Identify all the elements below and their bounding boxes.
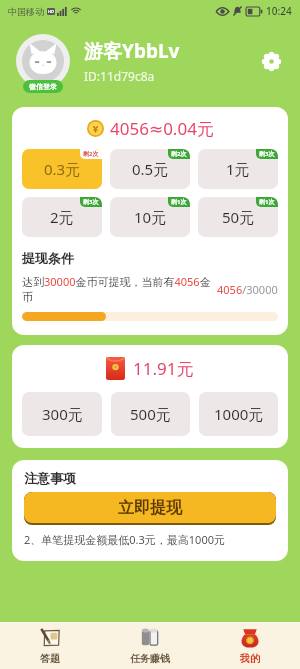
staticText: 500元 — [130, 404, 171, 424]
staticText: 1000元 — [214, 404, 264, 424]
staticText: 剩3次 — [83, 198, 99, 206]
staticText: 注意事项 — [24, 470, 76, 486]
button[interactable]: 10元 — [110, 197, 190, 237]
button[interactable]: 微信登录 — [23, 80, 63, 93]
staticText: 10:24 — [266, 4, 292, 18]
staticText: 剩3次 — [259, 150, 275, 158]
button[interactable]: 1000元 — [199, 392, 278, 436]
staticText: 4056≈0.04元 — [110, 117, 214, 140]
button[interactable]: 500元 — [111, 392, 190, 436]
staticText: 达到30000金币可提现，当前有4056金币 — [22, 274, 211, 304]
button[interactable]: 0.5元 — [110, 149, 190, 189]
staticText: 50元 — [222, 207, 255, 227]
staticText: 微信登录 — [29, 82, 57, 91]
staticText: 游客YbbLv — [84, 38, 180, 64]
button[interactable]: Settings — [256, 46, 286, 76]
staticText: 10元 — [134, 207, 167, 227]
button[interactable]: 答题 — [0, 622, 100, 669]
staticText: 提现条件 — [22, 250, 74, 266]
staticText: HD — [48, 9, 54, 14]
staticText: 剩1次 — [171, 198, 187, 206]
staticText: 2、单笔提现金额最低0.3元，最高1000元 — [24, 532, 225, 547]
button[interactable]: 50元 — [198, 197, 278, 237]
staticText: 300元 — [42, 404, 83, 424]
staticText: 11.91元 — [133, 357, 194, 380]
staticText: 0.3元 — [44, 159, 81, 179]
button[interactable]: 1元 — [198, 149, 278, 189]
button[interactable]: 立即提现 — [24, 492, 276, 523]
staticText: ID:11d79c8a — [84, 68, 155, 84]
button[interactable]: 2元 — [22, 197, 102, 237]
button[interactable]: 我的 — [200, 622, 300, 669]
staticText: 剩2次 — [171, 150, 187, 158]
staticText: 剩2次 — [83, 150, 99, 158]
staticText: 立即提现 — [118, 498, 182, 518]
staticText: 答题 — [40, 652, 60, 665]
staticText: 剩1次 — [259, 198, 275, 206]
staticText: 4056/30000 — [217, 282, 278, 297]
button[interactable]: 0.3元 — [22, 149, 102, 189]
staticText: 任务赚钱 — [130, 652, 170, 665]
button[interactable]: 300元 — [22, 392, 102, 436]
staticText: 中国移动 — [8, 6, 44, 17]
staticText: 我的 — [240, 652, 260, 665]
staticText: 2元 — [50, 207, 74, 227]
button[interactable]: 任务赚钱 — [100, 622, 200, 669]
staticText: 1元 — [226, 159, 250, 179]
staticText: 0.5元 — [132, 159, 169, 179]
